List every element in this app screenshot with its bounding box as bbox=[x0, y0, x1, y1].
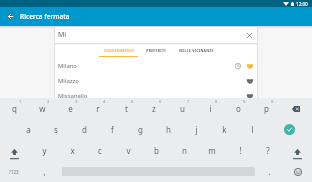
staticText: 12:00 bbox=[296, 1, 308, 7]
staticText: x bbox=[70, 145, 75, 156]
staticText: . bbox=[268, 166, 271, 177]
button[interactable]: g bbox=[126, 119, 154, 140]
staticText: g bbox=[138, 124, 143, 135]
button[interactable]: Backspace bbox=[280, 98, 312, 119]
button[interactable]: Emoji bbox=[283, 161, 312, 182]
button[interactable]: a bbox=[14, 119, 42, 140]
staticText: 2 bbox=[47, 99, 50, 104]
staticText: a bbox=[26, 124, 31, 135]
staticText: ? bbox=[266, 145, 270, 156]
button[interactable]: k bbox=[210, 119, 238, 140]
button[interactable]: e bbox=[56, 98, 84, 119]
staticText: 8 bbox=[215, 99, 218, 104]
staticText: Milano bbox=[58, 62, 77, 70]
staticText: l bbox=[251, 124, 254, 135]
button[interactable]: f bbox=[98, 119, 126, 140]
staticText: ! bbox=[239, 145, 242, 156]
staticText: PREFERITI bbox=[146, 48, 166, 53]
button[interactable]: Enter bbox=[267, 119, 312, 140]
button[interactable]: ?123 bbox=[0, 161, 28, 182]
staticText: v bbox=[126, 145, 131, 156]
button[interactable]: Back bbox=[0, 7, 21, 26]
button[interactable]: l bbox=[238, 119, 266, 140]
staticText: r bbox=[96, 103, 100, 114]
button[interactable]: Clear search bbox=[241, 27, 257, 43]
button[interactable]: y bbox=[30, 140, 58, 161]
staticText: ?123 bbox=[9, 169, 19, 175]
staticText: p bbox=[264, 103, 269, 114]
staticText: h bbox=[166, 124, 171, 135]
button[interactable]: Shift bbox=[283, 140, 312, 161]
staticText: s bbox=[54, 124, 58, 135]
button[interactable]: w bbox=[28, 98, 56, 119]
button[interactable]: Shift bbox=[0, 140, 29, 161]
button[interactable]: m bbox=[198, 140, 226, 161]
button[interactable]: Milano bbox=[55, 58, 257, 73]
button[interactable]: v bbox=[114, 140, 142, 161]
staticText: Mi bbox=[58, 30, 67, 40]
button[interactable]: Favourite bbox=[240, 88, 259, 103]
staticText: 4 bbox=[103, 99, 106, 104]
button[interactable]: , bbox=[30, 161, 58, 182]
staticText: m bbox=[208, 145, 216, 156]
staticText: 3 bbox=[75, 99, 78, 104]
button[interactable]: u bbox=[168, 98, 196, 119]
button[interactable]: Favourite bbox=[240, 73, 259, 88]
button[interactable]: b bbox=[142, 140, 170, 161]
button[interactable]: q bbox=[0, 98, 28, 119]
button[interactable]: p bbox=[252, 98, 280, 119]
staticText: c bbox=[98, 145, 102, 156]
staticText: SUGGERIMENTI bbox=[104, 48, 134, 53]
button[interactable]: Recent bbox=[227, 58, 249, 73]
staticText: w bbox=[39, 103, 46, 114]
button[interactable]: ? bbox=[254, 140, 282, 161]
staticText: i bbox=[209, 103, 212, 114]
staticText: 6 bbox=[159, 99, 162, 104]
button[interactable]: d bbox=[70, 119, 98, 140]
button[interactable]: o bbox=[224, 98, 252, 119]
staticText: y bbox=[42, 145, 47, 156]
button[interactable]: s bbox=[42, 119, 70, 140]
staticText: o bbox=[236, 103, 241, 114]
staticText: b bbox=[154, 145, 159, 156]
button[interactable]: SUGGERIMENTI bbox=[99, 45, 138, 57]
button[interactable]: z bbox=[140, 98, 168, 119]
button[interactable]: j bbox=[182, 119, 210, 140]
staticText: d bbox=[82, 124, 87, 135]
staticText: n bbox=[182, 145, 187, 156]
button[interactable]: n bbox=[170, 140, 198, 161]
button[interactable]: c bbox=[86, 140, 114, 161]
staticText: z bbox=[152, 103, 156, 114]
button[interactable]: r bbox=[84, 98, 112, 119]
staticText: q bbox=[12, 103, 17, 114]
staticText: k bbox=[222, 124, 227, 135]
button[interactable]: i bbox=[196, 98, 224, 119]
staticText: Milazzo bbox=[58, 77, 79, 85]
button[interactable]: NELLE VICINANZE bbox=[176, 45, 216, 57]
staticText: 9 bbox=[243, 99, 246, 104]
button[interactable]: PREFERITI bbox=[140, 45, 172, 57]
staticText: e bbox=[68, 103, 73, 114]
staticText: 5 bbox=[131, 99, 134, 104]
button[interactable]: . bbox=[255, 161, 283, 182]
button[interactable]: Favourite bbox=[240, 58, 259, 73]
button[interactable]: t bbox=[112, 98, 140, 119]
button[interactable]: x bbox=[58, 140, 86, 161]
button[interactable]: Missanello bbox=[55, 88, 257, 103]
staticText: Missanello bbox=[58, 92, 88, 100]
staticText: t bbox=[125, 103, 128, 114]
staticText: j bbox=[195, 124, 198, 135]
button[interactable]: h bbox=[154, 119, 182, 140]
staticText: Ricerca fermata bbox=[20, 12, 70, 21]
staticText: 0 bbox=[271, 99, 274, 104]
staticText: 1 bbox=[19, 99, 22, 104]
button[interactable]: Milazzo bbox=[55, 73, 257, 88]
staticText: , bbox=[43, 166, 46, 177]
button[interactable]: ! bbox=[226, 140, 254, 161]
staticText: f bbox=[111, 124, 114, 135]
staticText: u bbox=[180, 103, 185, 114]
staticText: NELLE VICINANZE bbox=[179, 48, 214, 53]
staticText: 7 bbox=[187, 99, 190, 104]
